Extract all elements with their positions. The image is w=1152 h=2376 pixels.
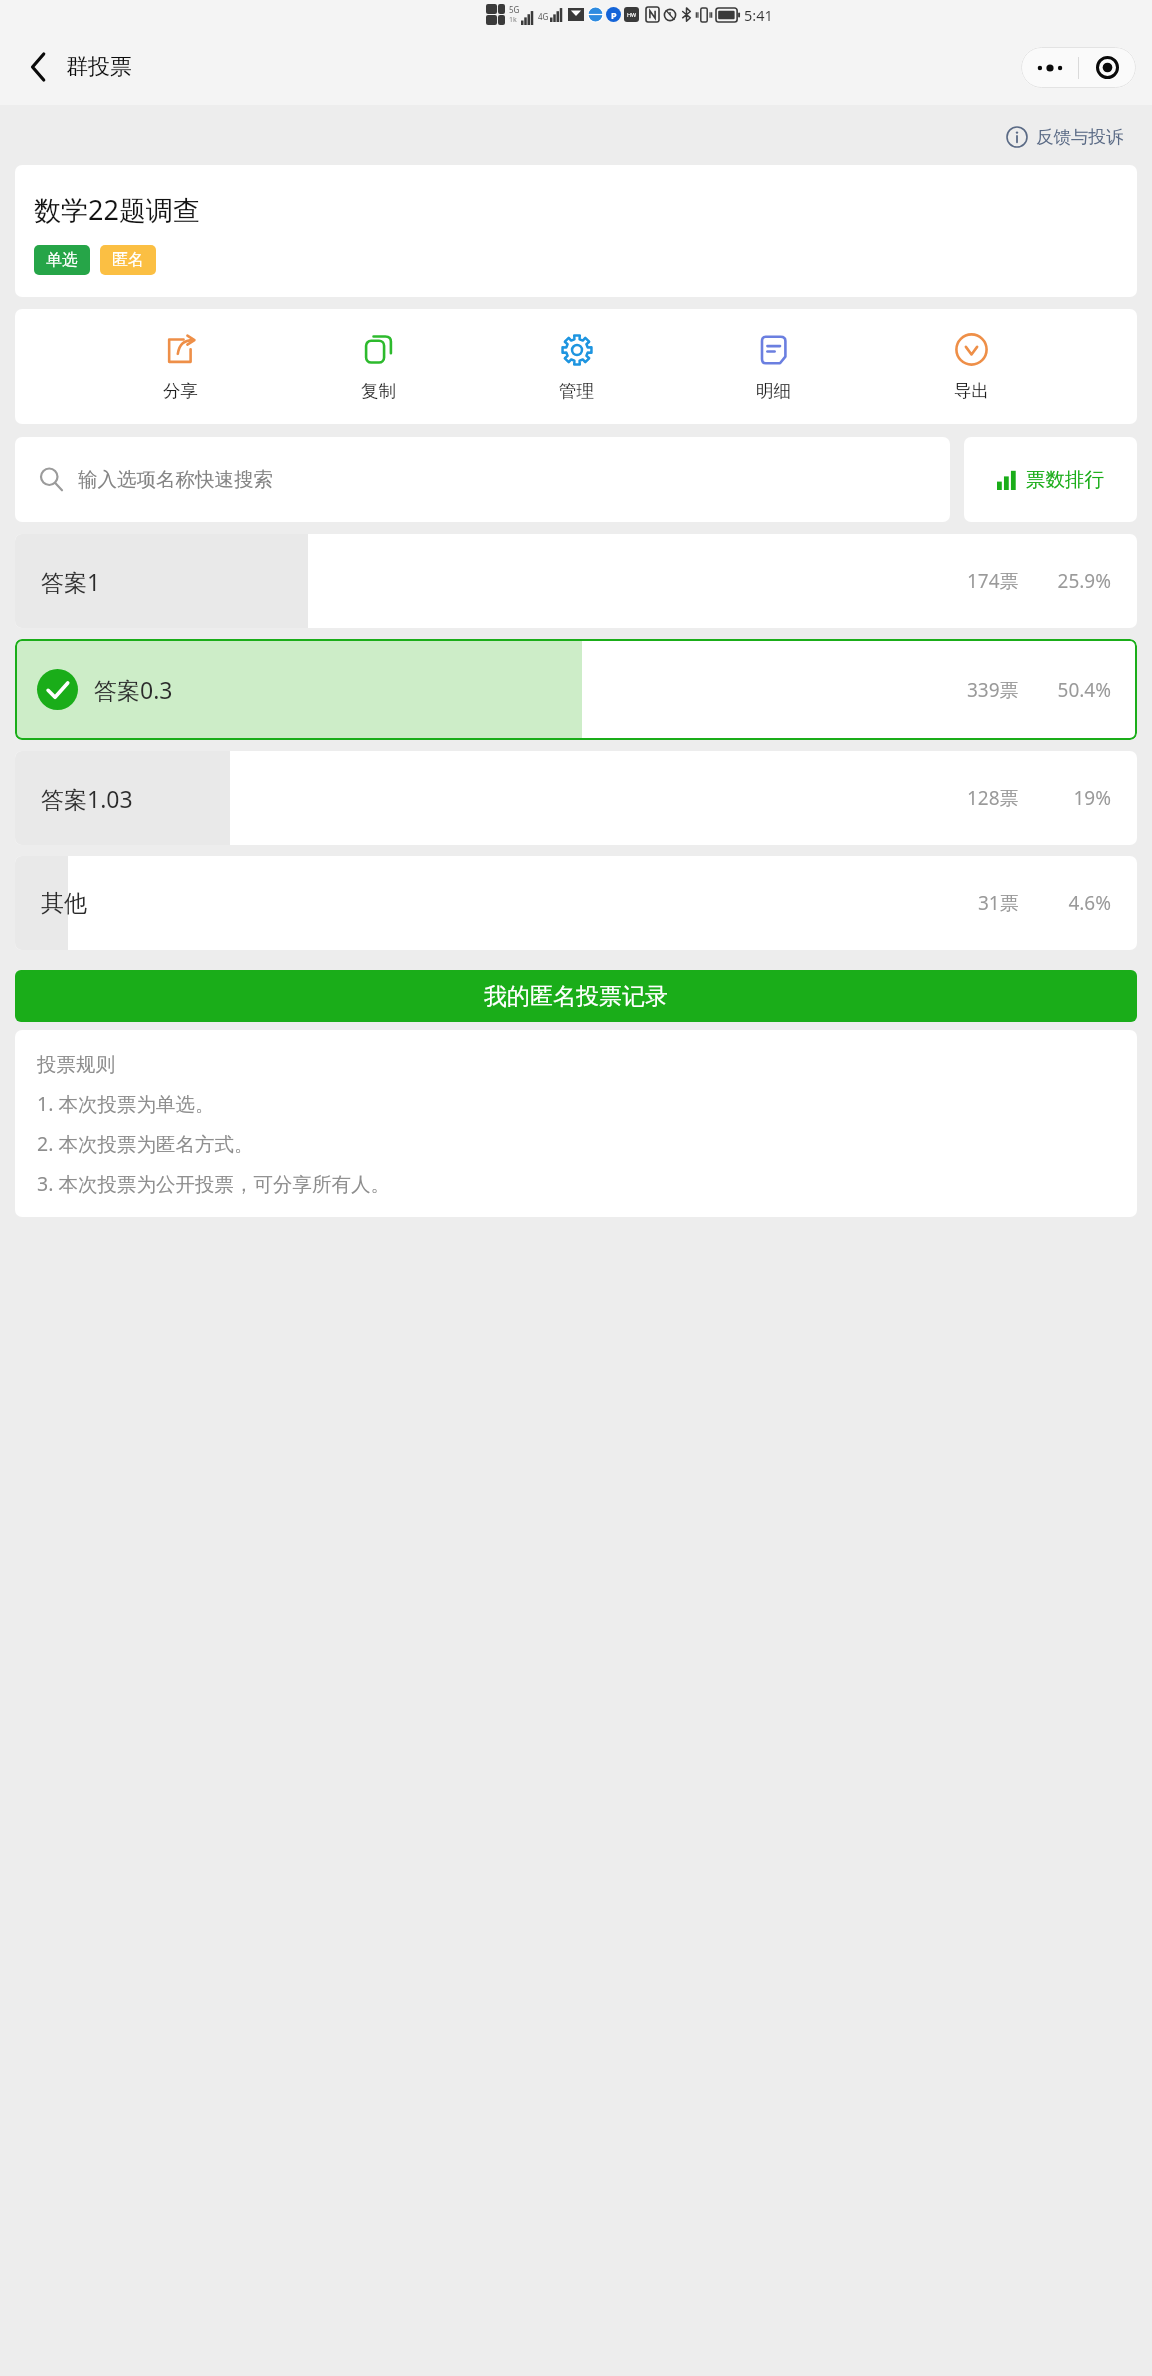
- button[interactable]: 管理: [544, 329, 609, 404]
- button[interactable]: Back: [18, 47, 132, 87]
- staticText: 匿名: [112, 250, 144, 270]
- staticText: 我的匿名投票记录: [484, 982, 668, 1011]
- staticText: 5G: [509, 4, 520, 15]
- staticText: 50.4%: [1033, 677, 1111, 703]
- staticText: 分享: [163, 380, 198, 402]
- button[interactable]: 我的匿名投票记录: [15, 970, 1137, 1022]
- staticText: 反馈与投诉: [1036, 126, 1124, 148]
- button[interactable]: 明细: [741, 329, 806, 404]
- staticText: 1k: [509, 15, 517, 25]
- staticText: 其他: [41, 889, 87, 918]
- button[interactable]: More: [1021, 47, 1078, 88]
- staticText: 5:41: [744, 5, 773, 25]
- staticText: 导出: [954, 380, 989, 402]
- button[interactable]: 票数排行: [964, 437, 1137, 522]
- button[interactable]: 答案1: [15, 534, 1137, 628]
- staticText: 4G: [538, 11, 549, 22]
- button[interactable]: Close: [1079, 47, 1136, 88]
- staticText: 339票: [967, 677, 1019, 703]
- staticText: HW: [627, 11, 637, 18]
- staticText: 答案1.03: [41, 783, 133, 814]
- button[interactable]: 答案0.3: [15, 639, 1137, 740]
- staticText: 31票: [978, 890, 1019, 916]
- staticText: 128票: [967, 785, 1019, 811]
- button[interactable]: 导出: [939, 329, 1004, 404]
- staticText: 管理: [559, 380, 594, 402]
- staticText: 4.6%: [1033, 890, 1111, 916]
- staticText: P: [611, 9, 617, 21]
- staticText: 答案0.3: [94, 674, 173, 705]
- button[interactable]: 复制: [346, 329, 411, 404]
- staticText: 19%: [1033, 785, 1111, 811]
- staticText: 174票: [967, 568, 1019, 594]
- button[interactable]: 反馈与投诉: [1000, 120, 1130, 154]
- staticText: 2. 本次投票为匿名方式。: [37, 1130, 254, 1157]
- other: Back: [18, 47, 58, 87]
- button[interactable]: 其他: [15, 856, 1137, 950]
- staticText: 1. 本次投票为单选。: [37, 1090, 215, 1117]
- button[interactable]: 数学22题调查: [15, 165, 1137, 297]
- staticText: 投票规则: [37, 1052, 115, 1077]
- staticText: 3. 本次投票为公开投票，可分享所有人。: [37, 1170, 390, 1197]
- staticText: 单选: [46, 250, 78, 270]
- staticText: 输入选项名称快速搜索: [78, 467, 273, 492]
- staticText: 群投票: [66, 53, 132, 81]
- staticText: 票数排行: [1026, 467, 1104, 492]
- button[interactable]: 答案1.03: [15, 751, 1137, 845]
- staticText: 复制: [361, 380, 396, 402]
- staticText: 明细: [756, 380, 791, 402]
- staticText: 数学22题调查: [34, 191, 200, 228]
- staticText: 答案1: [41, 566, 101, 597]
- button[interactable]: 分享: [148, 329, 213, 404]
- staticText: 25.9%: [1033, 568, 1111, 594]
- button[interactable]: 输入选项名称快速搜索: [15, 437, 950, 522]
